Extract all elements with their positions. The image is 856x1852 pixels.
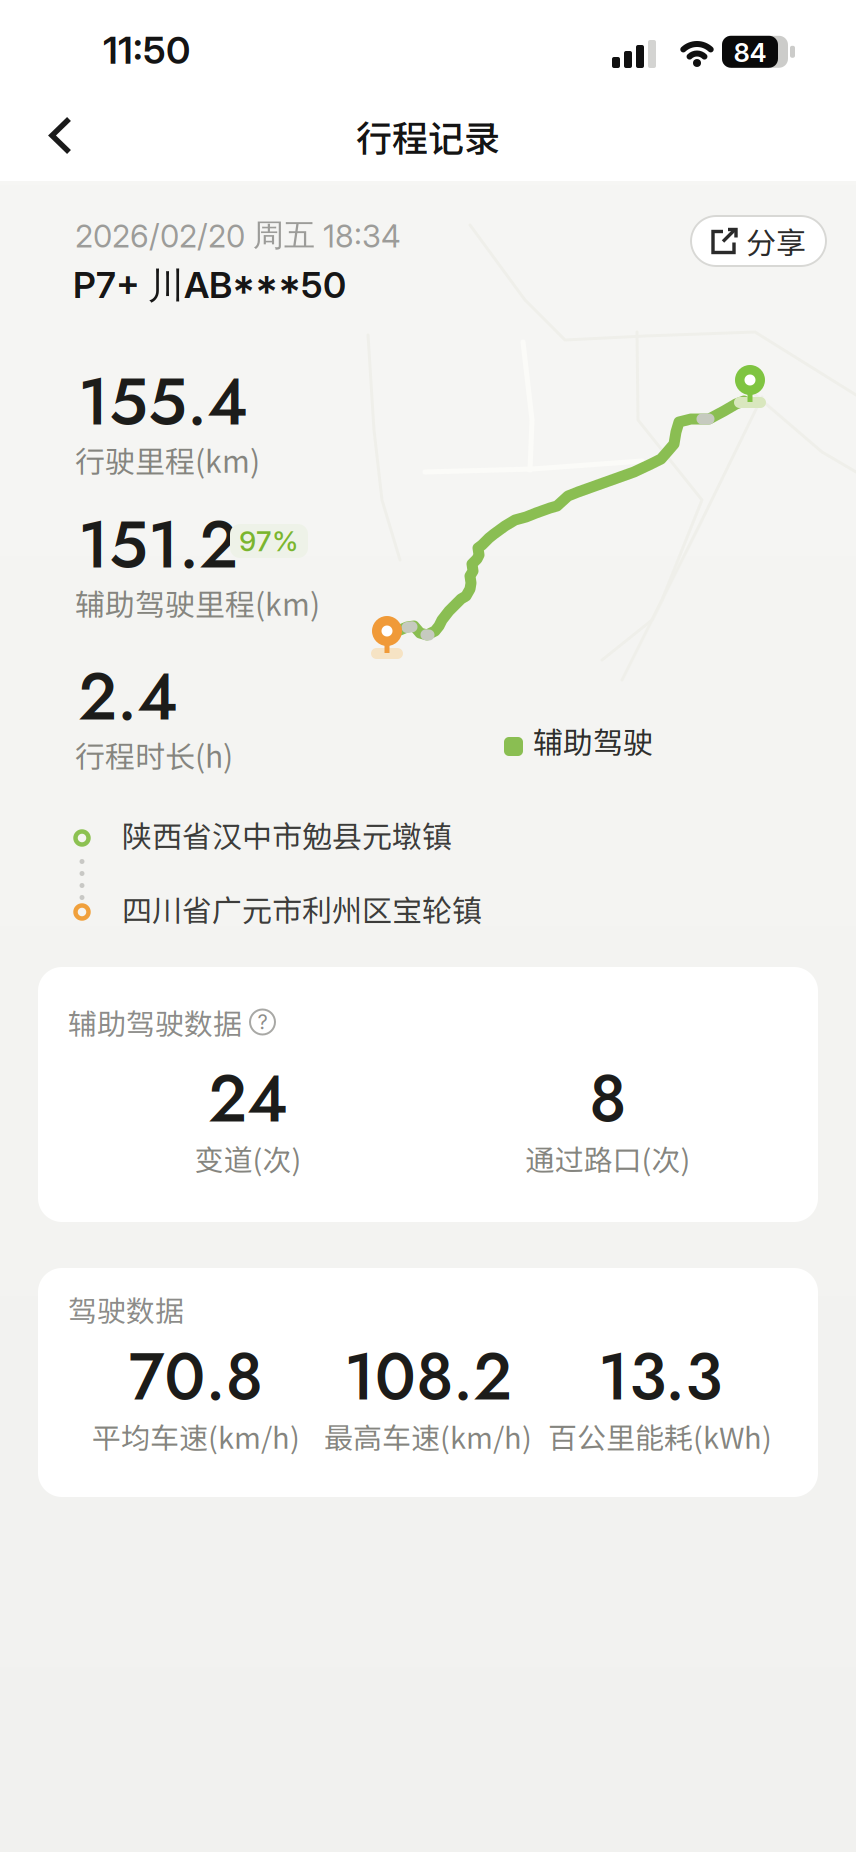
staticText: 分享 [746, 219, 806, 263]
staticText: 8 [589, 1052, 627, 1146]
staticText: 百公里能耗(kWh) [548, 1415, 772, 1457]
staticText: 行驶里程(km) [75, 438, 260, 481]
staticText: 变道(次) [194, 1137, 301, 1179]
staticText: 辅助驾驶数据 [68, 1001, 242, 1043]
staticText: 辅助驾驶 [533, 719, 653, 762]
button[interactable]: Help [250, 1009, 275, 1034]
button[interactable]: Share [690, 215, 827, 267]
staticText: 平均车速(km/h) [92, 1415, 300, 1457]
staticText: 70.8 [128, 1330, 263, 1424]
staticText: 陕西省汉中市勉县元墩镇 [122, 813, 452, 856]
staticText: 97% [239, 524, 299, 558]
staticText: 四川省广元市利州区宝轮镇 [122, 887, 482, 930]
staticText: 24 [208, 1052, 288, 1146]
staticText: 13.3 [598, 1330, 722, 1424]
staticText: P7+ 川AB***50 [73, 263, 346, 309]
staticText: 84 [733, 37, 766, 68]
staticText: 驾驶数据 [68, 1288, 184, 1330]
button[interactable]: Back [0, 0, 74, 156]
staticText: 2.4 [78, 650, 178, 744]
staticText: 辅助驾驶里程(km) [75, 581, 320, 624]
staticText: 155.4 [78, 355, 248, 449]
staticText: 行程记录 [356, 110, 500, 162]
staticText: 行程时长(h) [75, 733, 233, 776]
staticText: 151.2 [78, 498, 238, 592]
staticText: 108.2 [344, 1330, 512, 1424]
staticText: 2026/02/20 周五 18:34 [75, 216, 401, 255]
staticText: ? [257, 1010, 267, 1034]
staticText: 最高车速(km/h) [324, 1415, 532, 1457]
staticText: 11:50 [103, 27, 190, 73]
staticText: 通过路口(次) [525, 1137, 690, 1179]
